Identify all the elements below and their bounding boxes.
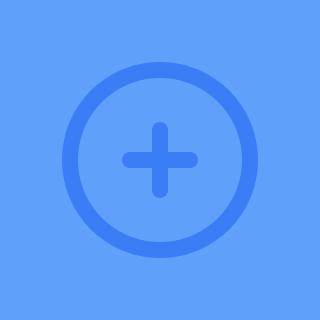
button[interactable]: Add [62,62,258,258]
